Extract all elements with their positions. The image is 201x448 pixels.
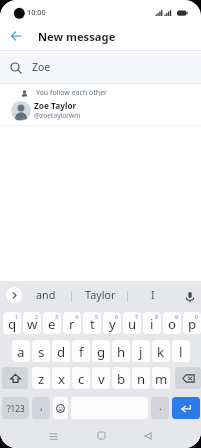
button[interactable]: Back: [6, 26, 26, 46]
button[interactable]: p: [183, 312, 201, 334]
button[interactable]: k: [152, 340, 170, 362]
button[interactable]: Emoji: [53, 397, 68, 419]
staticText: f: [79, 343, 84, 361]
button[interactable]: Taylor: [78, 281, 122, 312]
staticText: 6: [115, 313, 119, 320]
button[interactable]: Back: [138, 426, 158, 446]
button[interactable]: I: [131, 281, 175, 312]
button[interactable]: n: [132, 367, 150, 389]
staticText: 3: [55, 313, 59, 320]
staticText: q: [8, 315, 17, 333]
button[interactable]: a: [12, 340, 30, 362]
button[interactable]: Zoe Taylor: [0, 99, 201, 125]
staticText: a: [17, 343, 25, 361]
button[interactable]: l: [172, 340, 190, 362]
button[interactable]: c: [72, 367, 90, 389]
button[interactable]: m: [152, 367, 170, 389]
button[interactable]: Backspace: [175, 367, 201, 389]
button[interactable]: e: [43, 312, 61, 334]
staticText: ,: [40, 399, 43, 413]
button[interactable]: Expand toolbar: [6, 287, 22, 303]
button[interactable]: i: [143, 312, 161, 334]
button[interactable]: x: [52, 367, 70, 389]
staticText: 8: [155, 313, 159, 320]
staticText: e: [48, 315, 56, 333]
staticText: d: [57, 343, 66, 361]
staticText: n: [137, 370, 146, 388]
staticText: 7: [135, 313, 139, 320]
staticText: b: [117, 370, 126, 388]
button[interactable]: d: [52, 340, 70, 362]
staticText: m: [155, 370, 168, 388]
button[interactable]: Recents: [43, 426, 63, 446]
button[interactable]: y: [103, 312, 121, 334]
staticText: i: [150, 315, 154, 333]
staticText: o: [168, 315, 176, 333]
staticText: t: [90, 315, 95, 333]
staticText: p: [188, 315, 197, 333]
staticText: u: [128, 315, 137, 333]
staticText: y: [109, 315, 116, 333]
staticText: You follow each other: [36, 88, 107, 98]
button[interactable]: o: [163, 312, 181, 334]
button[interactable]: z: [32, 367, 50, 389]
staticText: k: [157, 343, 165, 361]
staticText: h: [117, 343, 126, 361]
staticText: c: [78, 370, 85, 388]
staticText: s: [38, 343, 45, 361]
staticText: 10:00: [27, 7, 46, 17]
button[interactable]: Zoe: [0, 51, 201, 83]
button[interactable]: Enter: [172, 397, 200, 419]
staticText: 5: [95, 313, 99, 320]
button[interactable]: w: [23, 312, 41, 334]
staticText: ?123: [7, 403, 25, 414]
staticText: 4: [75, 313, 79, 320]
button[interactable]: g: [92, 340, 110, 362]
button[interactable]: Voice input: [181, 288, 198, 305]
button[interactable]: Home: [91, 425, 111, 445]
button[interactable]: b: [112, 367, 130, 389]
staticText: I: [151, 287, 155, 302]
staticText: 1: [15, 313, 19, 320]
staticText: Zoe Taylor: [34, 100, 77, 111]
button[interactable]: .: [151, 397, 169, 419]
staticText: v: [98, 370, 105, 388]
staticText: x: [58, 370, 65, 388]
staticText: .: [159, 399, 162, 413]
staticText: Zoe: [32, 60, 51, 74]
button[interactable]: h: [112, 340, 130, 362]
button[interactable]: s: [32, 340, 50, 362]
staticText: and: [36, 287, 56, 302]
staticText: 0: [195, 313, 199, 320]
staticText: r: [69, 315, 75, 333]
button[interactable]: and: [24, 281, 68, 312]
staticText: l: [179, 343, 183, 361]
button[interactable]: q: [3, 312, 21, 334]
staticText: j: [139, 343, 143, 361]
staticText: g: [97, 343, 106, 361]
button[interactable]: f: [72, 340, 90, 362]
button[interactable]: r: [63, 312, 81, 334]
button[interactable]: j: [132, 340, 150, 362]
button[interactable]: v: [92, 367, 110, 389]
button[interactable]: Shift: [2, 367, 28, 389]
button[interactable]: u: [123, 312, 141, 334]
staticText: @zoetaylorwm: [34, 111, 81, 120]
staticText: Taylor: [85, 287, 116, 302]
button[interactable]: t: [83, 312, 101, 334]
staticText: 9: [175, 313, 179, 320]
staticText: z: [38, 370, 45, 388]
staticText: w: [27, 315, 38, 333]
staticText: New message: [38, 29, 116, 44]
button[interactable]: ?123: [2, 397, 29, 419]
staticText: 2: [35, 313, 39, 320]
button[interactable]: ,: [32, 397, 50, 419]
